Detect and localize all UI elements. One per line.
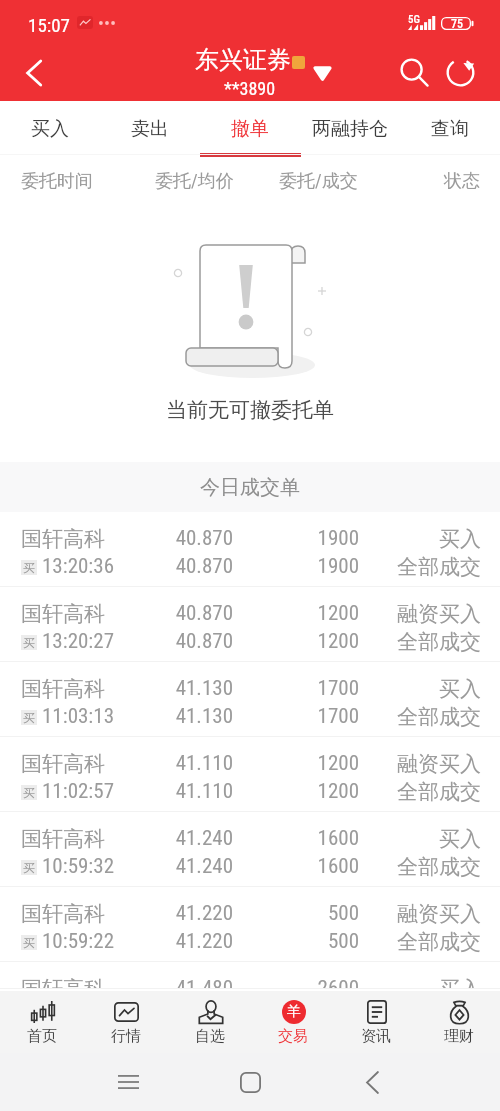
button[interactable]: Search — [390, 44, 438, 101]
staticText: 融资买入 — [371, 751, 481, 777]
staticText: 全部成交 — [371, 554, 481, 580]
staticText: 买 — [23, 860, 35, 875]
staticText: 国轩高科 — [21, 976, 105, 989]
button[interactable]: 买入 — [0, 101, 100, 155]
button[interactable]: 羊 — [251, 991, 334, 1053]
staticText: 40.870 — [93, 526, 233, 551]
button[interactable]: Back — [311, 1053, 433, 1111]
staticText: 1200 — [249, 629, 359, 654]
staticText: 41.110 — [93, 779, 233, 804]
staticText: 状态 — [444, 170, 480, 193]
staticText: 41.240 — [93, 854, 233, 879]
staticText: 委托/均价 — [155, 170, 234, 193]
button[interactable]: 理财 — [417, 991, 500, 1053]
button[interactable]: 行情 — [84, 991, 168, 1053]
staticText: 国轩高科 — [21, 751, 105, 777]
staticText: 1900 — [249, 526, 359, 551]
staticText: 融资买入 — [371, 601, 481, 627]
button[interactable]: 首页 — [0, 991, 84, 1053]
staticText: 撤单 — [231, 117, 269, 141]
staticText: 11:03:13 — [42, 704, 115, 729]
button[interactable]: 国轩高科 — [0, 887, 500, 962]
staticText: 5G — [408, 13, 420, 26]
staticText: 41.240 — [93, 826, 233, 851]
button[interactable]: 两融持仓 — [300, 101, 400, 155]
staticText: 1200 — [249, 779, 359, 804]
staticText: 买 — [23, 935, 35, 950]
staticText: 委托/成交 — [279, 170, 358, 193]
button[interactable]: Refresh — [436, 44, 484, 101]
staticText: 全部成交 — [371, 929, 481, 955]
button[interactable]: 国轩高科 — [0, 962, 500, 989]
staticText: 国轩高科 — [21, 901, 105, 927]
staticText: 10:59:32 — [42, 854, 115, 879]
staticText: 国轩高科 — [21, 601, 105, 627]
staticText: 交易 — [278, 1027, 308, 1046]
staticText: 今日成交单 — [200, 475, 300, 500]
staticText: 1700 — [249, 704, 359, 729]
staticText: 40.870 — [93, 629, 233, 654]
button[interactable]: 资讯 — [334, 991, 417, 1053]
staticText: 41.130 — [93, 704, 233, 729]
staticText: 40.870 — [93, 554, 233, 579]
staticText: 1600 — [249, 854, 359, 879]
button[interactable]: Home — [189, 1053, 311, 1111]
staticText: 1900 — [249, 554, 359, 579]
staticText: 羊 — [287, 1003, 301, 1021]
staticText: 国轩高科 — [21, 676, 105, 702]
staticText: 融资买入 — [371, 901, 481, 927]
staticText: 75 — [451, 17, 463, 30]
staticText: 全部成交 — [371, 779, 481, 805]
staticText: 全部成交 — [371, 854, 481, 880]
staticText: 当前无可撤委托单 — [166, 397, 334, 423]
staticText: 国轩高科 — [21, 826, 105, 852]
staticText: 理财 — [444, 1027, 474, 1046]
staticText: 国轩高科 — [21, 526, 105, 552]
staticText: 买 — [23, 635, 35, 650]
staticText: 1700 — [249, 676, 359, 701]
staticText: 10:59:22 — [42, 929, 115, 954]
button[interactable]: 国轩高科 — [0, 812, 500, 887]
staticText: 自选 — [195, 1027, 225, 1046]
staticText: 买入 — [371, 976, 481, 989]
button[interactable]: 国轩高科 — [0, 662, 500, 737]
button[interactable]: 自选 — [168, 991, 251, 1053]
staticText: 11:02:57 — [42, 779, 115, 804]
staticText: 15:07 — [28, 14, 70, 36]
button[interactable]: 国轩高科 — [0, 512, 500, 587]
staticText: 41.130 — [93, 676, 233, 701]
staticText: 买入 — [31, 117, 69, 141]
staticText: 2600 — [249, 976, 359, 989]
staticText: 41.220 — [93, 901, 233, 926]
staticText: 卖出 — [131, 117, 169, 141]
staticText: 买 — [23, 710, 35, 725]
staticText: 1600 — [249, 826, 359, 851]
staticText: **3890 — [224, 78, 276, 99]
staticText: 行情 — [111, 1027, 141, 1046]
staticText: 东兴证券 — [195, 45, 291, 75]
button[interactable]: Recent apps — [67, 1053, 189, 1111]
button[interactable]: 国轩高科 — [0, 737, 500, 812]
staticText: 500 — [249, 901, 359, 926]
staticText: 500 — [249, 929, 359, 954]
staticText: 首页 — [27, 1027, 57, 1046]
staticText: 委托时间 — [21, 170, 93, 193]
staticText: 资讯 — [361, 1027, 391, 1046]
button[interactable]: 国轩高科 — [0, 587, 500, 662]
staticText: 13:20:36 — [42, 554, 115, 579]
staticText: 全部成交 — [371, 704, 481, 730]
button[interactable]: 查询 — [400, 101, 500, 155]
button[interactable]: Back — [3, 44, 65, 101]
staticText: 41.220 — [93, 929, 233, 954]
staticText: 买入 — [371, 676, 481, 702]
staticText: 查询 — [431, 117, 469, 141]
staticText: 全部成交 — [371, 629, 481, 655]
button[interactable]: 卖出 — [100, 101, 200, 155]
button[interactable]: 撤单 — [200, 101, 300, 155]
staticText: 41.480 — [93, 976, 233, 989]
staticText: 13:20:27 — [42, 629, 115, 654]
staticText: 1200 — [249, 751, 359, 776]
button[interactable]: Switch account — [306, 57, 338, 89]
staticText: 买入 — [371, 826, 481, 852]
staticText: 41.110 — [93, 751, 233, 776]
